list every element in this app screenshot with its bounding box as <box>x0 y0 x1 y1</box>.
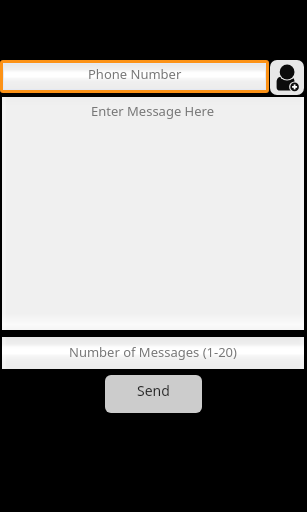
button[interactable]: Add contact <box>270 60 304 95</box>
staticText: Send <box>137 381 170 400</box>
staticText: Enter Message Here <box>91 102 215 120</box>
button[interactable]: Phone Number <box>4 64 265 89</box>
button[interactable]: Enter Message Here <box>2 97 304 330</box>
button[interactable]: Number of Messages (1-20) <box>2 337 304 369</box>
staticText: Phone Number <box>88 65 182 83</box>
staticText: Number of Messages (1-20) <box>69 343 237 361</box>
button[interactable]: Send <box>105 375 202 413</box>
